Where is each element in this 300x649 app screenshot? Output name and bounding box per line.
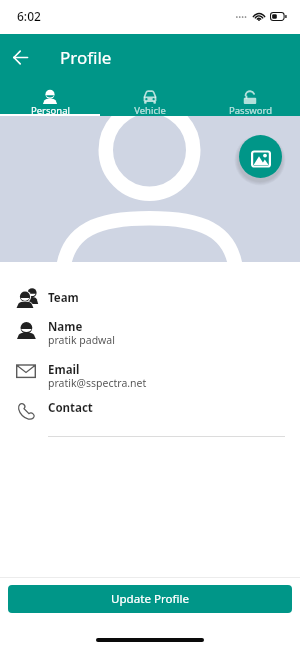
button[interactable]: Change profile photo — [239, 135, 282, 178]
button[interactable]: Team — [0, 284, 300, 312]
button[interactable]: Contact — [0, 396, 300, 424]
staticText: pratik padwal — [48, 333, 115, 347]
staticText: Email — [48, 362, 80, 378]
button[interactable]: Email — [0, 357, 300, 395]
staticText: Password — [229, 104, 272, 117]
button[interactable]: Password — [200, 78, 300, 116]
staticText: Profile — [60, 46, 112, 69]
button[interactable]: Back — [6, 43, 34, 71]
staticText: 6:02 — [17, 8, 41, 24]
staticText: Name — [48, 319, 83, 335]
staticText: Update Profile — [111, 591, 190, 607]
button[interactable]: Name — [0, 315, 300, 353]
staticText: Personal — [31, 104, 70, 117]
staticText: pratik@sspectra.net — [48, 376, 147, 390]
button[interactable]: Vehicle — [100, 78, 200, 116]
button[interactable]: Update Profile — [8, 585, 292, 613]
staticText: Team — [48, 290, 79, 306]
button[interactable]: Personal — [0, 78, 100, 116]
staticText: Vehicle — [134, 104, 166, 117]
staticText: Contact — [48, 400, 93, 416]
